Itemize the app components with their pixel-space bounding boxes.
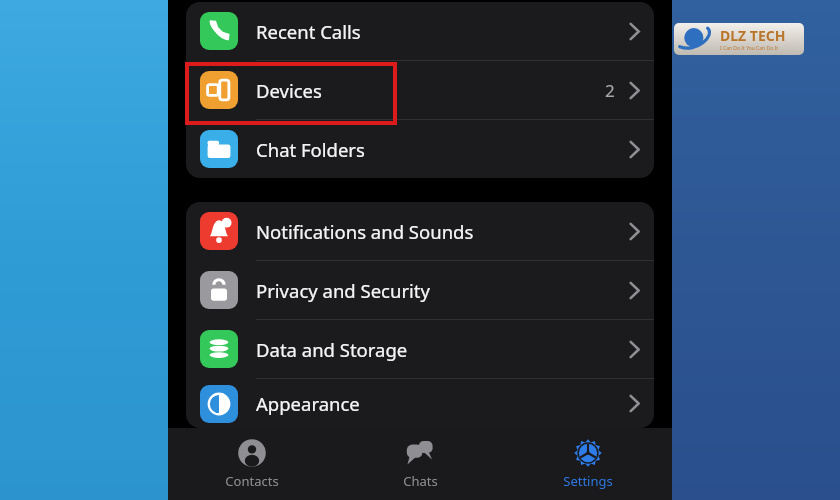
- button[interactable]: Chats: [336, 428, 504, 500]
- staticText: 2: [605, 79, 615, 102]
- staticText: Contacts: [225, 472, 279, 490]
- button[interactable]: Data and Storage: [186, 320, 654, 379]
- button[interactable]: Chat Folders: [186, 120, 654, 178]
- staticText: Chats: [403, 472, 438, 490]
- staticText: Recent Calls: [256, 19, 361, 44]
- staticText: Devices: [256, 78, 322, 103]
- button[interactable]: Contacts: [168, 428, 336, 500]
- staticText: DLZ TECH: [720, 26, 786, 45]
- staticText: Appearance: [256, 391, 360, 416]
- button[interactable]: Recent Calls: [186, 2, 654, 61]
- staticText: Notifications and Sounds: [256, 219, 474, 244]
- staticText: Data and Storage: [256, 337, 408, 362]
- staticText: Privacy and Security: [256, 278, 430, 303]
- staticText: Settings: [563, 472, 613, 490]
- button[interactable]: Devices: [186, 61, 654, 120]
- staticText: I Can Do It You Can Do It: [720, 45, 778, 52]
- button[interactable]: Privacy and Security: [186, 261, 654, 320]
- staticText: Chat Folders: [256, 137, 365, 162]
- button[interactable]: Appearance: [186, 379, 654, 428]
- button[interactable]: Notifications and Sounds: [186, 202, 654, 261]
- button[interactable]: Settings: [504, 428, 672, 500]
